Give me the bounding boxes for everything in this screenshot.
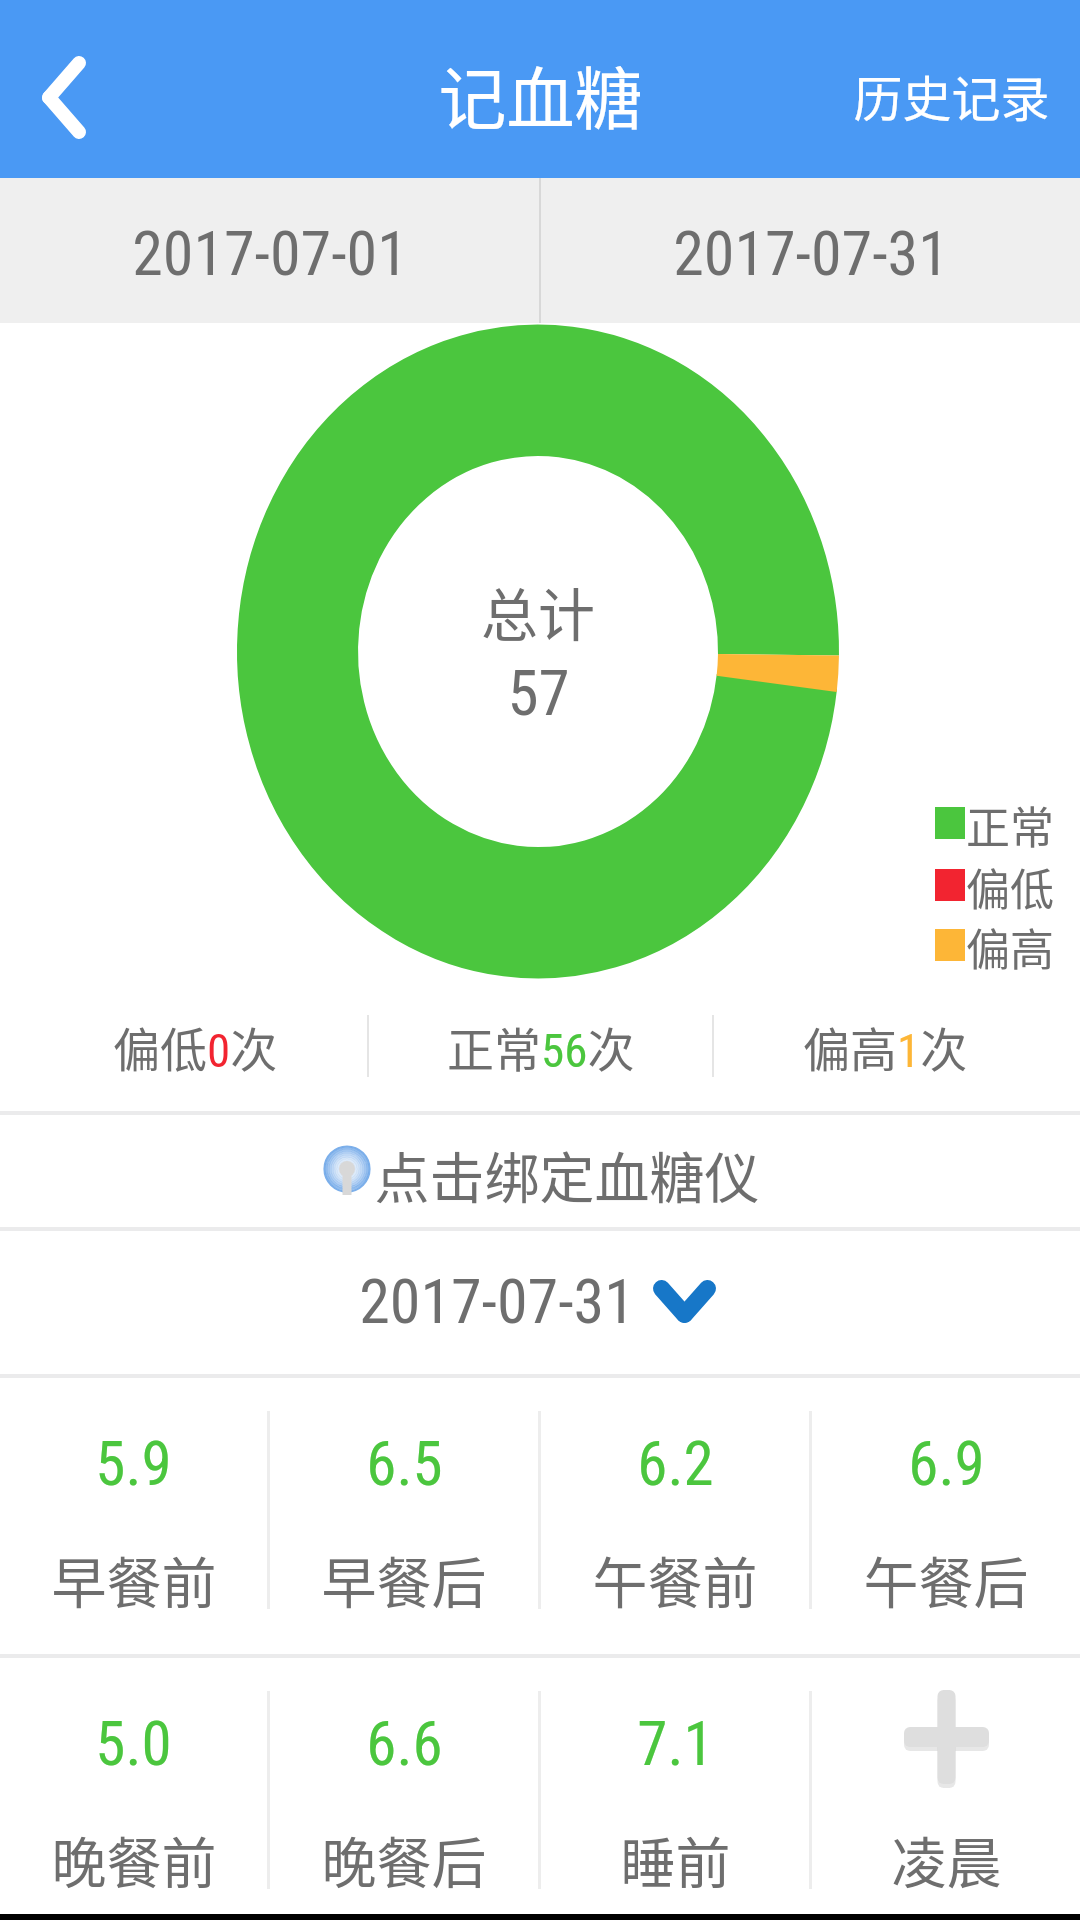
button[interactable]: 凌晨 [812,1658,1080,1920]
button[interactable]: 正常56次 [369,980,712,1112]
staticText: 凌晨 [891,1819,1002,1899]
staticText: 2017-07-31 [359,1265,635,1338]
staticText: 点击绑定血糖仪 [374,1134,760,1214]
staticText: 睡前 [620,1819,731,1899]
staticText: 偏低 [966,855,1054,919]
button[interactable]: 5.9 [0,1378,267,1655]
button[interactable]: 历史记录 [853,0,1050,178]
staticText: 晚餐后 [321,1819,487,1899]
button[interactable]: 偏高1次 [714,980,1057,1112]
button[interactable]: 2017-07-01 [0,178,539,323]
staticText: 早餐后 [321,1539,487,1619]
staticText: 午餐后 [863,1539,1029,1619]
staticText: 2017-07-31 [673,217,949,290]
staticText: 正常 [966,793,1054,857]
staticText: 记血糖 [438,45,643,143]
staticText: 57 [507,657,570,731]
button[interactable]: 6.9 [812,1378,1080,1655]
button[interactable]: 5.0 [0,1658,267,1920]
button[interactable]: 点击绑定血糖仪 [0,1115,1080,1228]
staticText: 晚餐前 [51,1819,217,1899]
staticText: 2017-07-01 [132,217,408,290]
staticText: 5.9 [95,1428,172,1499]
staticText: 总计 [481,570,595,653]
staticText: 偏高1次 [803,1012,968,1080]
staticText: 早餐前 [51,1539,217,1619]
button[interactable]: 6.6 [270,1658,538,1920]
staticText: 偏低0次 [113,1012,278,1080]
staticText: 7.1 [637,1708,714,1779]
staticText: 6.9 [908,1428,985,1499]
staticText: 5.0 [95,1708,172,1779]
button[interactable]: 6.5 [270,1378,538,1655]
button[interactable]: 2017-07-31 [0,1231,1080,1375]
button[interactable]: 7.1 [541,1658,809,1920]
staticText: 午餐前 [592,1539,758,1619]
button[interactable]: 6.2 [541,1378,809,1655]
button[interactable]: Back [0,0,128,178]
staticText: 6.2 [637,1428,714,1499]
staticText: 偏高 [966,915,1054,979]
staticText: 正常56次 [447,1012,635,1080]
staticText: 历史记录 [853,60,1050,131]
staticText: 6.6 [366,1708,443,1779]
button[interactable]: 偏低0次 [23,980,367,1112]
button[interactable]: 2017-07-31 [541,178,1080,323]
staticText: 6.5 [366,1428,443,1499]
